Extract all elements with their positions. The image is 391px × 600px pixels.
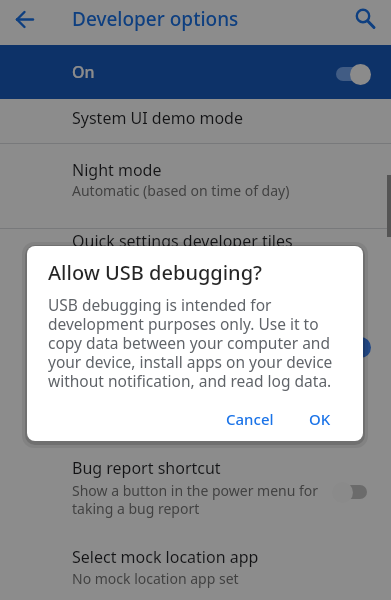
button[interactable] [336,67,370,81]
staticText: Allow USB debugging? [48,259,262,286]
staticText: Night mode [72,159,162,181]
staticText: Quick settings developer tiles [72,230,293,252]
staticText: Cancel [226,409,274,429]
button[interactable]: Bug report shortcut [72,448,221,488]
staticText: On [72,61,95,83]
staticText: USB debugging is intended for developmen… [48,294,333,391]
staticText: System UI demo mode [72,107,243,129]
button[interactable]: Cancel [214,401,286,437]
staticText: Bug report shortcut [72,457,221,479]
button[interactable] [9,3,41,35]
button[interactable]: Select mock location app [72,537,259,577]
staticText: OK [309,409,331,429]
staticText: taking a bug report [72,499,200,518]
button[interactable] [333,485,367,499]
button[interactable]: OK [292,401,348,437]
staticText: Developer options [72,6,239,32]
button[interactable]: System UI demo mode [72,98,243,138]
button[interactable]: Night mode [72,150,162,190]
staticText: Select mock location app [72,546,259,568]
staticText: Automatic (based on time of day) [72,181,290,200]
staticText: Show a button in the power menu for [72,481,319,500]
staticText: No mock location app set [72,569,239,588]
button[interactable]: Quick settings developer tiles [72,221,293,261]
button[interactable] [0,45,391,99]
button[interactable] [347,2,381,36]
button[interactable] [336,340,370,354]
